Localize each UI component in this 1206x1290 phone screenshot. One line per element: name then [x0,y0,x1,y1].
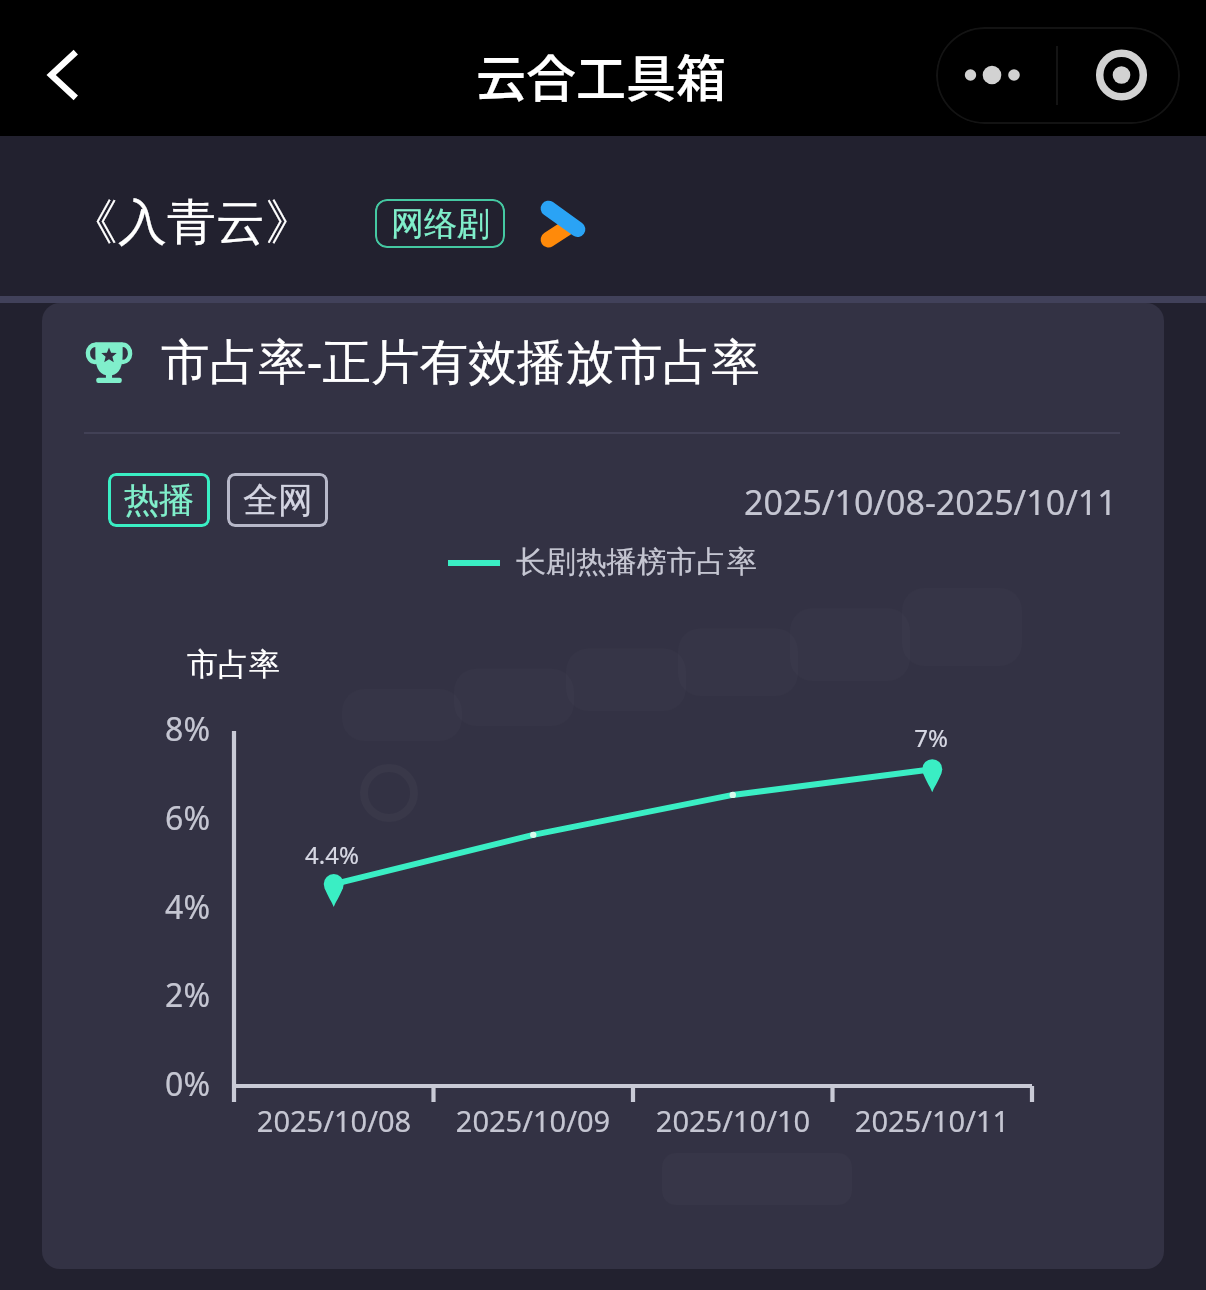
staticText: 4% [60,885,210,929]
staticText: 2025/10/08 [234,1101,434,1140]
staticText: 2025/10/11 [832,1101,1032,1140]
staticText: 2025/10/09 [433,1101,633,1140]
button[interactable]: Close mini program [1060,27,1180,124]
staticText: 市占率 [187,645,280,684]
staticText: 市占率-正片有效播放市占率 [161,327,760,393]
staticText: 云合工具箱 [476,39,726,111]
button[interactable]: 热播 [108,473,210,527]
button[interactable]: 网络剧 [375,199,505,248]
staticText: 长剧热播榜市占率 [516,543,757,581]
button[interactable]: More options [936,27,1056,124]
staticText: 0% [60,1062,210,1106]
staticText: 网络剧 [391,203,490,245]
staticText: 8% [60,707,210,751]
button[interactable]: 全网 [227,473,328,527]
button[interactable]: Back [28,38,100,114]
staticText: 2025/10/10 [633,1101,833,1140]
staticText: 热播 [124,478,194,522]
staticText: 4.4% [252,838,412,871]
staticText: 7% [851,721,1011,754]
staticText: 2025/10/08-2025/10/11 [744,479,1117,525]
staticText: 2% [60,973,210,1017]
staticText: 全网 [243,478,313,522]
staticText: 《入青云》 [69,192,314,254]
staticText: 6% [60,796,210,840]
